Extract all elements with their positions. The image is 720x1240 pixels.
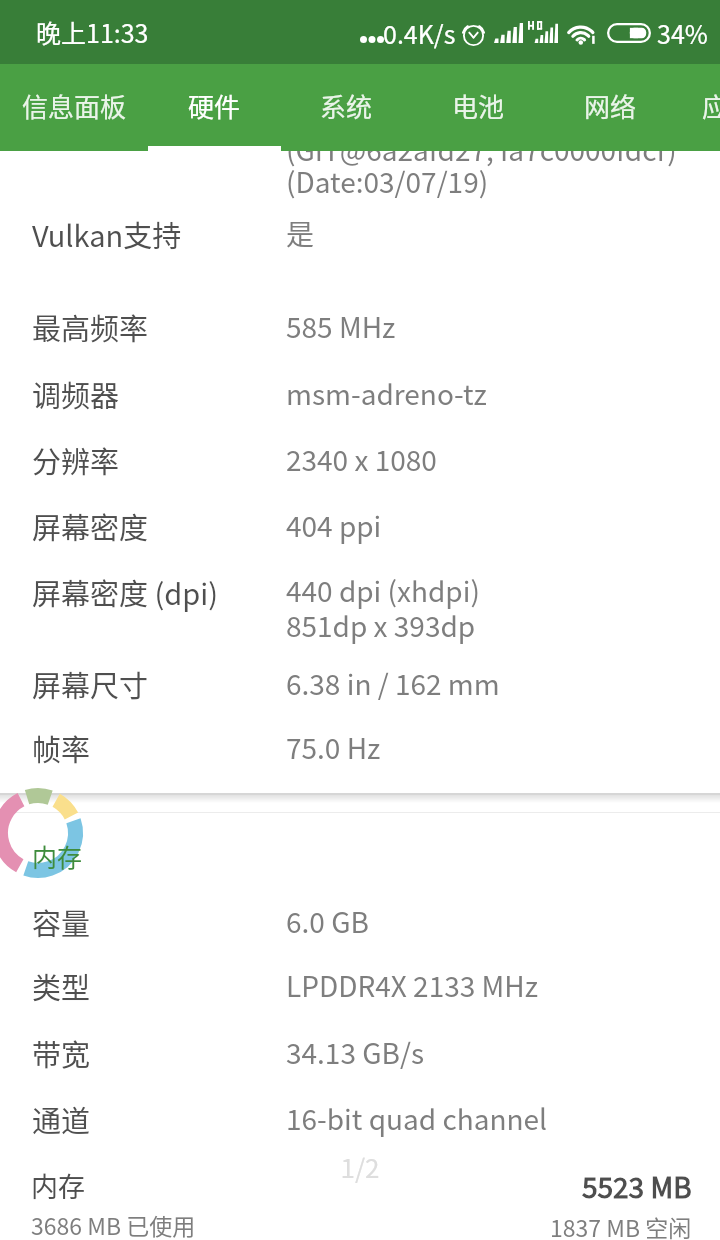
staticText: 电池 [452, 87, 505, 125]
staticText: 34% [657, 15, 708, 51]
button[interactable] [0, 366, 720, 428]
button[interactable]: 应用 [662, 64, 720, 151]
button[interactable] [0, 958, 720, 1020]
staticText: 1837 MB 空闲 [550, 1210, 692, 1240]
staticText: 网络 [584, 87, 637, 125]
staticText: 帧率 [32, 727, 91, 769]
staticText: Vulkan支持 [32, 213, 182, 255]
staticText: 是 [286, 213, 315, 254]
staticText: 内存 [31, 1166, 85, 1205]
button[interactable] [0, 299, 720, 361]
staticText: 2340 x 1080 [286, 439, 437, 480]
staticText: 屏幕密度 (dpi) [32, 571, 219, 613]
button[interactable] [0, 1091, 720, 1153]
staticText: LPDDR4X 2133 MHz [286, 965, 538, 1006]
staticText: 分辨率 [32, 439, 120, 481]
button[interactable]: 硬件 [148, 64, 281, 151]
button[interactable] [0, 1025, 720, 1087]
button[interactable] [0, 894, 720, 956]
button[interactable]: 网络 [544, 64, 677, 151]
staticText: msm-adreno-tz [286, 373, 487, 414]
staticText: 带宽 [32, 1032, 91, 1074]
staticText: 5523 MB [582, 1166, 692, 1207]
staticText: 16-bit quad channel [286, 1098, 548, 1139]
staticText: 1/2 [0, 1148, 720, 1186]
staticText: 3686 MB 已使用 [31, 1208, 196, 1240]
staticText: (Date:03/07/19) [286, 161, 489, 202]
staticText: 34.13 GB/s [286, 1032, 424, 1073]
staticText: 0.4K/s [383, 15, 456, 51]
other: Battery [607, 23, 651, 43]
other: Alarm [461, 21, 486, 46]
staticText: 6.0 GB [286, 901, 369, 942]
staticText: 屏幕尺寸 [32, 663, 149, 705]
staticText: 应用 [702, 87, 720, 125]
staticText: 信息面板 [22, 87, 127, 125]
staticText: 404 ppi [286, 505, 382, 546]
button[interactable] [0, 498, 720, 560]
button[interactable]: 系统 [280, 64, 413, 151]
staticText: (GIT@6a2afd27, Ia7c0000fdcf) [286, 129, 677, 170]
staticText: 440 dpi (xhdpi) [286, 570, 480, 611]
button[interactable] [0, 432, 720, 494]
staticText: 75.0 Hz [286, 727, 381, 768]
staticText: 晚上11:33 [36, 14, 149, 50]
staticText: 容量 [32, 901, 91, 943]
button[interactable] [0, 720, 720, 782]
button[interactable]: 信息面板 [0, 64, 148, 151]
staticText: 通道 [32, 1098, 91, 1140]
button[interactable] [0, 656, 720, 718]
staticText: 内存 [32, 838, 83, 874]
button[interactable]: 电池 [412, 64, 545, 151]
staticText: 屏幕密度 [32, 505, 149, 547]
staticText: 851dp x 393dp [286, 605, 476, 646]
other: Wi-Fi [567, 22, 597, 45]
button[interactable] [0, 548, 720, 642]
staticText: 585 MHz [286, 306, 396, 347]
other: HD mobile signal [528, 21, 558, 43]
staticText: 系统 [320, 87, 373, 125]
button[interactable] [0, 206, 720, 268]
other: Mobile signal [494, 23, 523, 43]
staticText: 类型 [32, 965, 91, 1007]
staticText: 最高频率 [32, 306, 149, 348]
staticText: 硬件 [188, 87, 241, 125]
staticText: 调频器 [32, 373, 120, 415]
staticText: 6.38 in / 162 mm [286, 663, 500, 704]
button[interactable]: 内存 [0, 1166, 720, 1240]
